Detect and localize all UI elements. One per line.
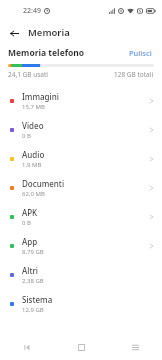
button[interactable]: Audio xyxy=(0,144,162,173)
staticText: Altri xyxy=(22,265,39,276)
staticText: APK xyxy=(22,207,38,218)
button[interactable]: Pulisci xyxy=(127,47,154,59)
staticText: Documenti xyxy=(22,178,65,189)
button[interactable]: Indietro xyxy=(6,25,22,41)
staticText: Sistema xyxy=(22,294,53,305)
staticText: Video xyxy=(22,120,44,131)
staticText: 128 GB totali xyxy=(114,70,154,79)
button[interactable]: Altri xyxy=(0,260,162,289)
staticText: 1,9 MB xyxy=(22,161,42,169)
button[interactable]: App xyxy=(0,231,162,260)
staticText: Immagini xyxy=(22,91,59,102)
staticText: Memoria telefono xyxy=(8,47,85,59)
button[interactable]: Home xyxy=(54,334,108,360)
button[interactable]: APK xyxy=(0,202,162,231)
staticText: 62,0 MB xyxy=(22,190,45,198)
button[interactable]: App recenti xyxy=(108,334,162,360)
button[interactable]: Video xyxy=(0,115,162,144)
staticText: Audio xyxy=(22,149,45,160)
staticText: 0 B xyxy=(22,219,31,227)
staticText: 24,1 GB usati xyxy=(8,70,49,79)
staticText: 8,79 GB xyxy=(22,248,44,256)
staticText: Pulisci xyxy=(129,48,152,58)
staticText: App xyxy=(22,236,38,247)
staticText: 22:49 xyxy=(23,6,41,16)
staticText: 2,38 GB xyxy=(22,277,44,285)
staticText: 15,7 MB xyxy=(22,103,45,111)
button[interactable]: Indietro xyxy=(0,334,54,360)
button[interactable]: Immagini xyxy=(0,86,162,115)
staticText: 0 B xyxy=(22,132,31,140)
staticText: Memoria xyxy=(28,26,70,39)
button[interactable]: Sistema xyxy=(0,289,162,318)
button[interactable]: Documenti xyxy=(0,173,162,202)
staticText: 12,9 GB xyxy=(22,306,44,314)
